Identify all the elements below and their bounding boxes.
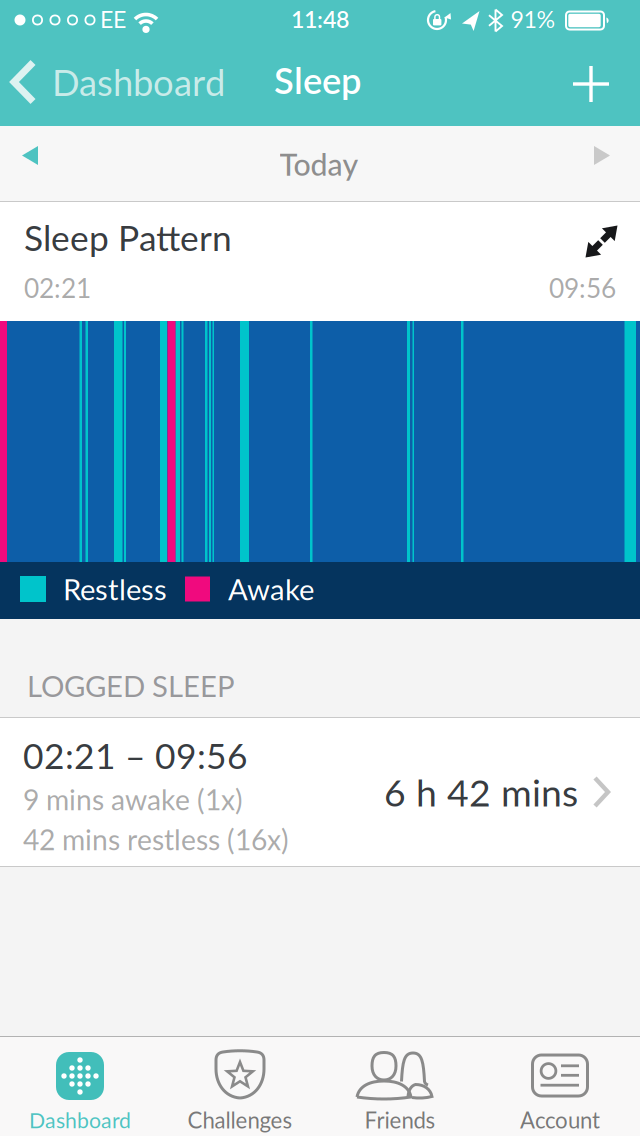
staticText: Account: [520, 1107, 600, 1133]
staticText: 09:56: [549, 272, 616, 303]
button[interactable]: Back to Dashboard: [0, 40, 225, 105]
staticText: 91%: [510, 5, 555, 33]
staticText: LOGGED SLEEP: [27, 668, 235, 703]
button[interactable]: Challenges: [160, 1037, 320, 1136]
staticText: 11:48: [291, 5, 349, 33]
button[interactable]: Friends: [320, 1037, 480, 1136]
staticText: 02:21 – 09:56: [23, 734, 248, 776]
button[interactable]: 02:21 – 09:56: [0, 718, 640, 866]
staticText: Challenges: [187, 1107, 292, 1133]
button[interactable]: Next day: [570, 126, 640, 201]
staticText: Sleep: [274, 58, 362, 102]
staticText: Sleep Pattern: [24, 216, 232, 258]
staticText: Awake: [228, 571, 314, 607]
staticText: Dashboard: [52, 60, 225, 104]
staticText: Today: [279, 146, 358, 182]
staticText: 02:21: [24, 272, 91, 303]
staticText: EE: [100, 5, 126, 33]
button[interactable]: Dashboard: [0, 1037, 160, 1136]
staticText: 9 mins awake (1x): [23, 782, 243, 816]
button[interactable]: Expand sleep pattern: [573, 218, 623, 268]
button[interactable]: Add sleep log: [561, 54, 621, 114]
staticText: Dashboard: [29, 1107, 131, 1133]
staticText: 6 h 42 mins: [384, 770, 578, 814]
staticText: Restless: [63, 571, 167, 607]
button[interactable]: Account: [480, 1037, 640, 1136]
staticText: Friends: [364, 1107, 435, 1133]
staticText: 42 mins restless (16x): [23, 822, 289, 856]
button[interactable]: Previous day: [0, 126, 70, 201]
